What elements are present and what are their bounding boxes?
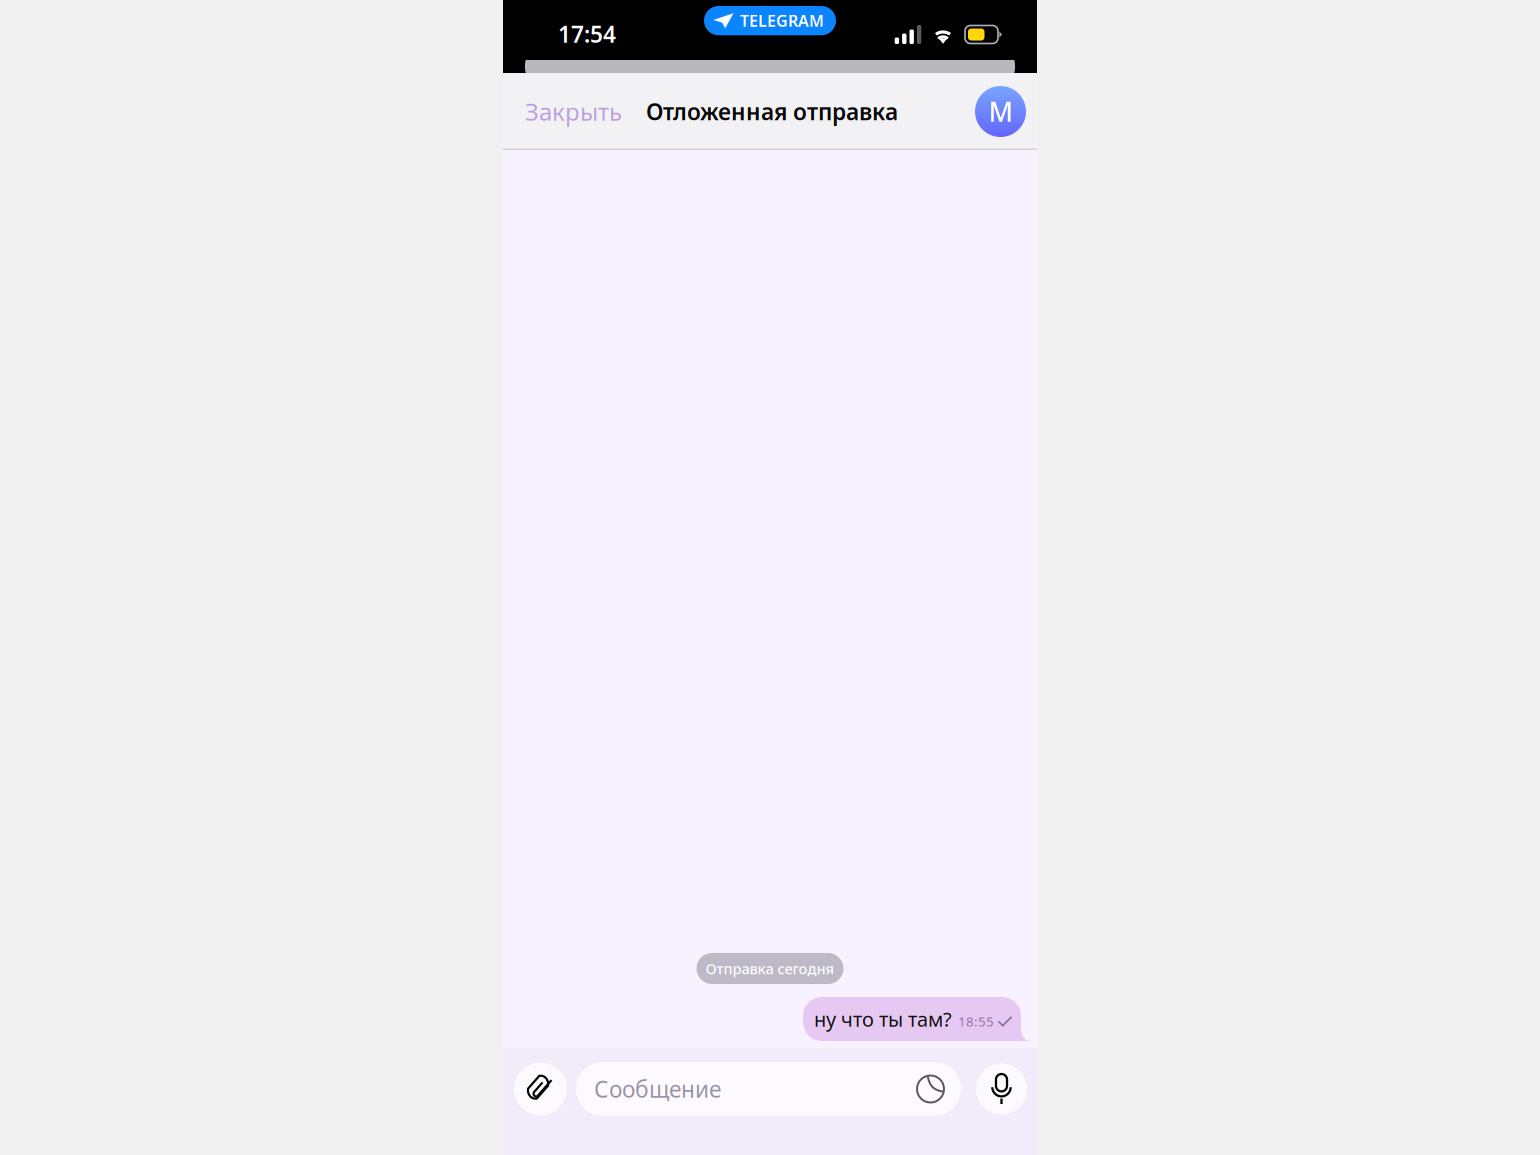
staticText: TELEGRAM (740, 10, 824, 31)
staticText: Отложенная отправка (646, 96, 898, 126)
staticText: 17:54 (558, 19, 616, 49)
staticText: Закрыть (525, 96, 622, 127)
staticText: 18:55 (958, 1013, 994, 1030)
staticText: M (988, 94, 1012, 129)
button[interactable]: ну что ты там? (803, 997, 1030, 1041)
staticText: Сообщение (594, 1074, 721, 1104)
button[interactable]: Profile (975, 86, 1026, 137)
button[interactable]: Voice message (976, 1062, 1027, 1116)
staticText: Отправка сегодня (705, 959, 834, 978)
staticText: ну что ты там? (814, 1006, 952, 1032)
button[interactable]: Stickers (917, 1075, 944, 1102)
button[interactable]: Attach (514, 1062, 567, 1116)
button[interactable]: Закрыть (503, 83, 630, 140)
